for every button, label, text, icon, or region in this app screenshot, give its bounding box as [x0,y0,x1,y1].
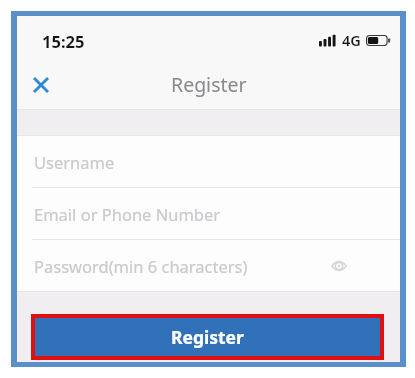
staticText: Register [171,71,247,98]
staticText: 4G [342,30,361,50]
button[interactable]: Password(min 6 characters) [17,240,400,291]
staticText: 15:25 [42,30,85,52]
staticText: Password(min 6 characters) [34,255,248,277]
button[interactable]: Email or Phone Number [17,188,400,239]
button[interactable]: Close [25,69,57,101]
button[interactable]: Register [35,318,380,356]
button[interactable]: Username [17,136,400,187]
staticText: Username [34,151,115,173]
staticText: Register [171,325,244,349]
staticText: Email or Phone Number [34,203,221,225]
button[interactable]: Show password [327,254,351,278]
